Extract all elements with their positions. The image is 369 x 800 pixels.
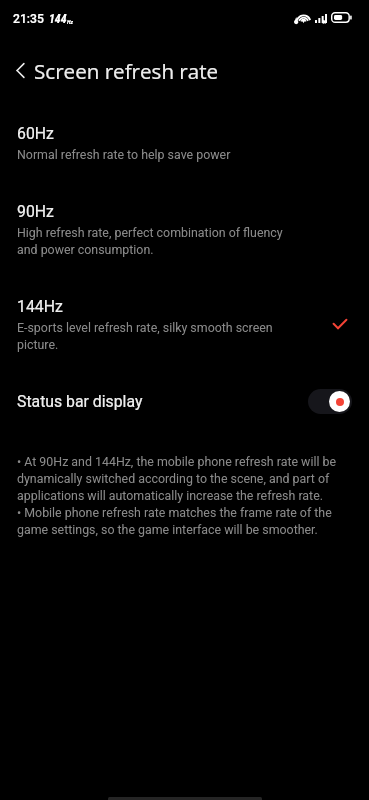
staticText: Screen refresh rate bbox=[34, 57, 219, 83]
staticText: 144 bbox=[49, 12, 67, 26]
staticText: 60Hz bbox=[17, 124, 54, 143]
staticText: • Mobile phone refresh rate matches the … bbox=[17, 504, 332, 538]
staticText: Normal refresh rate to help save power bbox=[17, 146, 231, 163]
staticText: • At 90Hz and 144Hz, the mobile phone re… bbox=[17, 453, 337, 504]
staticText: High refresh rate, perfect combination o… bbox=[17, 224, 283, 258]
staticText: 144Hz bbox=[17, 297, 63, 316]
button[interactable]: 60Hz bbox=[0, 115, 369, 172]
button[interactable]: Status bar display bbox=[0, 383, 369, 419]
button[interactable]: Back bbox=[7, 57, 34, 83]
button[interactable]: 144Hz bbox=[0, 288, 369, 362]
button[interactable]: 90Hz bbox=[0, 193, 369, 267]
staticText: 90Hz bbox=[17, 202, 54, 221]
staticText: 21:35 bbox=[13, 12, 44, 26]
staticText: E-sports level refresh rate, silky smoot… bbox=[17, 319, 273, 353]
staticText: Hz bbox=[67, 19, 73, 26]
staticText: Status bar display bbox=[17, 392, 143, 411]
